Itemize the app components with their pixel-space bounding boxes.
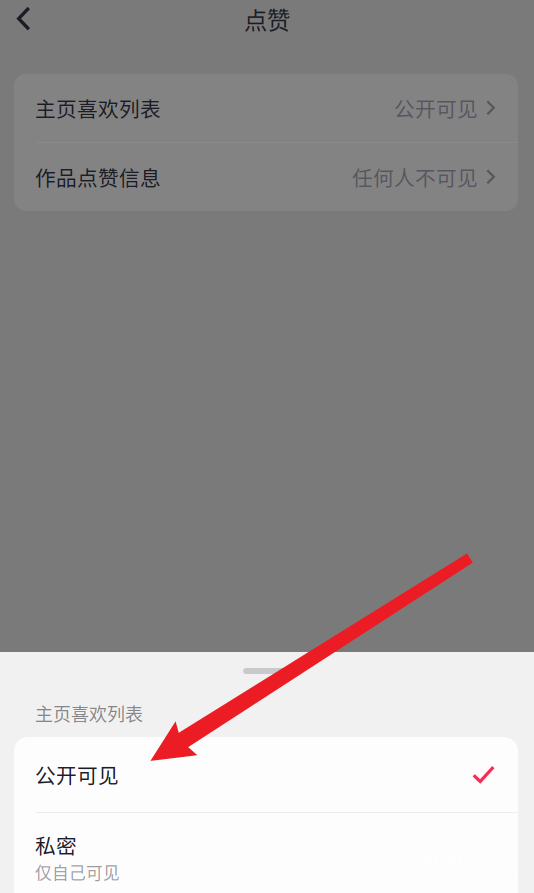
button[interactable]: 私密: [14, 813, 518, 893]
button[interactable]: 公开可见: [14, 737, 518, 812]
staticText: 仅自己可见: [35, 860, 120, 884]
staticText: 作品点赞信息: [35, 162, 161, 192]
staticText: 私密: [35, 830, 77, 860]
button[interactable]: 主页喜欢列表: [14, 74, 518, 142]
staticText: 任何人不可见: [352, 162, 478, 192]
staticText: 公开可见: [394, 93, 478, 123]
button[interactable]: Back: [0, 0, 48, 38]
button[interactable]: 作品点赞信息: [14, 143, 518, 211]
staticText: 点赞: [244, 2, 290, 36]
staticText: 公开可见: [35, 759, 119, 789]
staticText: 主页喜欢列表: [35, 700, 143, 726]
staticText: 主页喜欢列表: [35, 93, 161, 123]
